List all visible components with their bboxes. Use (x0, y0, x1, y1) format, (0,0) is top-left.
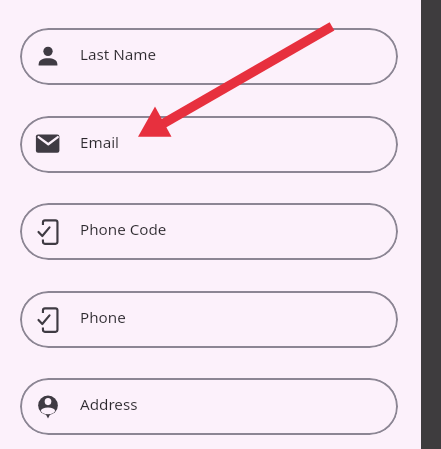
staticText: Last Name (80, 44, 157, 65)
other: Email (34, 130, 62, 158)
staticText: Address (80, 394, 138, 415)
button[interactable]: Location (20, 378, 398, 435)
button[interactable]: Verified phone (20, 291, 398, 348)
other: Verified phone (34, 217, 62, 245)
staticText: Phone Code (80, 219, 167, 240)
button[interactable]: Person (20, 28, 398, 85)
other: Verified phone (34, 305, 62, 333)
staticText: Phone (80, 307, 126, 328)
button[interactable]: Email (20, 116, 398, 173)
other: Person (34, 42, 62, 70)
staticText: Email (80, 132, 120, 153)
button[interactable]: Verified phone (20, 203, 398, 260)
other: Location (34, 392, 62, 420)
